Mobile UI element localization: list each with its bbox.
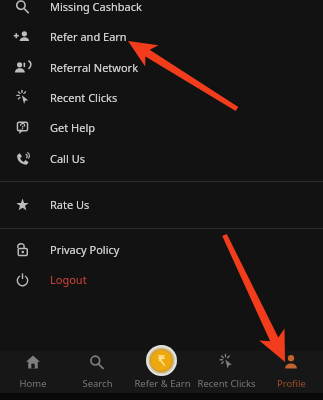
button[interactable]: Refer & Earn [130, 351, 194, 393]
button[interactable]: Privacy Policy [0, 234, 323, 264]
button[interactable]: Logout [0, 264, 323, 294]
button[interactable]: Recent Clicks [194, 351, 258, 393]
button[interactable]: Get Help [0, 112, 323, 142]
button[interactable]: Rate Us [0, 189, 323, 219]
button[interactable]: Refer and Earn [0, 21, 323, 51]
staticText: Refer and Earn [50, 29, 127, 44]
button[interactable]: Missing Cashback [0, 0, 323, 21]
staticText: Home [19, 377, 47, 390]
staticText: Privacy Policy [50, 242, 120, 257]
staticText: Get Help [50, 120, 96, 135]
other: Refer and Earn [146, 345, 177, 376]
staticText: Rate Us [50, 197, 90, 212]
button[interactable]: Home [1, 351, 65, 393]
staticText: Missing Cashback [50, 0, 142, 14]
button[interactable]: Search [65, 351, 129, 393]
button[interactable]: Recent Clicks [0, 82, 323, 112]
staticText: Profile [277, 377, 306, 390]
staticText: Logout [50, 272, 87, 287]
staticText: Recent Clicks [197, 377, 256, 390]
button[interactable]: Profile [259, 351, 323, 393]
staticText: Refer & Earn [134, 377, 191, 390]
button[interactable]: Call Us [0, 143, 323, 173]
staticText: Referral Network [50, 60, 139, 75]
staticText: Call Us [50, 151, 85, 166]
staticText: Search [82, 377, 113, 390]
staticText: Recent Clicks [50, 90, 118, 105]
button[interactable]: Referral Network [0, 52, 323, 82]
